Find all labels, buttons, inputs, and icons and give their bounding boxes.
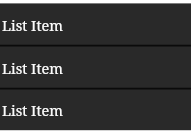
button[interactable]: List Item — [0, 3, 191, 46]
button[interactable]: List Item — [0, 47, 191, 90]
button[interactable]: List Item — [0, 90, 191, 131]
staticText: List Item — [2, 15, 63, 35]
staticText: List Item — [2, 100, 63, 120]
staticText: List Item — [2, 58, 63, 78]
